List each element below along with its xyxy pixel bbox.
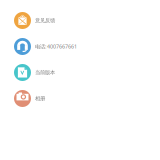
button[interactable]: 相册 [0, 90, 160, 107]
staticText: 相册 [35, 95, 45, 102]
staticText: 电话: 4007667661 [35, 43, 77, 50]
button[interactable]: 客服电话 [0, 38, 160, 55]
button[interactable]: 当前版本 [0, 64, 160, 81]
staticText: 当前版本 [35, 69, 55, 76]
staticText: 意见反馈 [35, 17, 55, 24]
button[interactable]: 意见反馈 [0, 12, 160, 29]
